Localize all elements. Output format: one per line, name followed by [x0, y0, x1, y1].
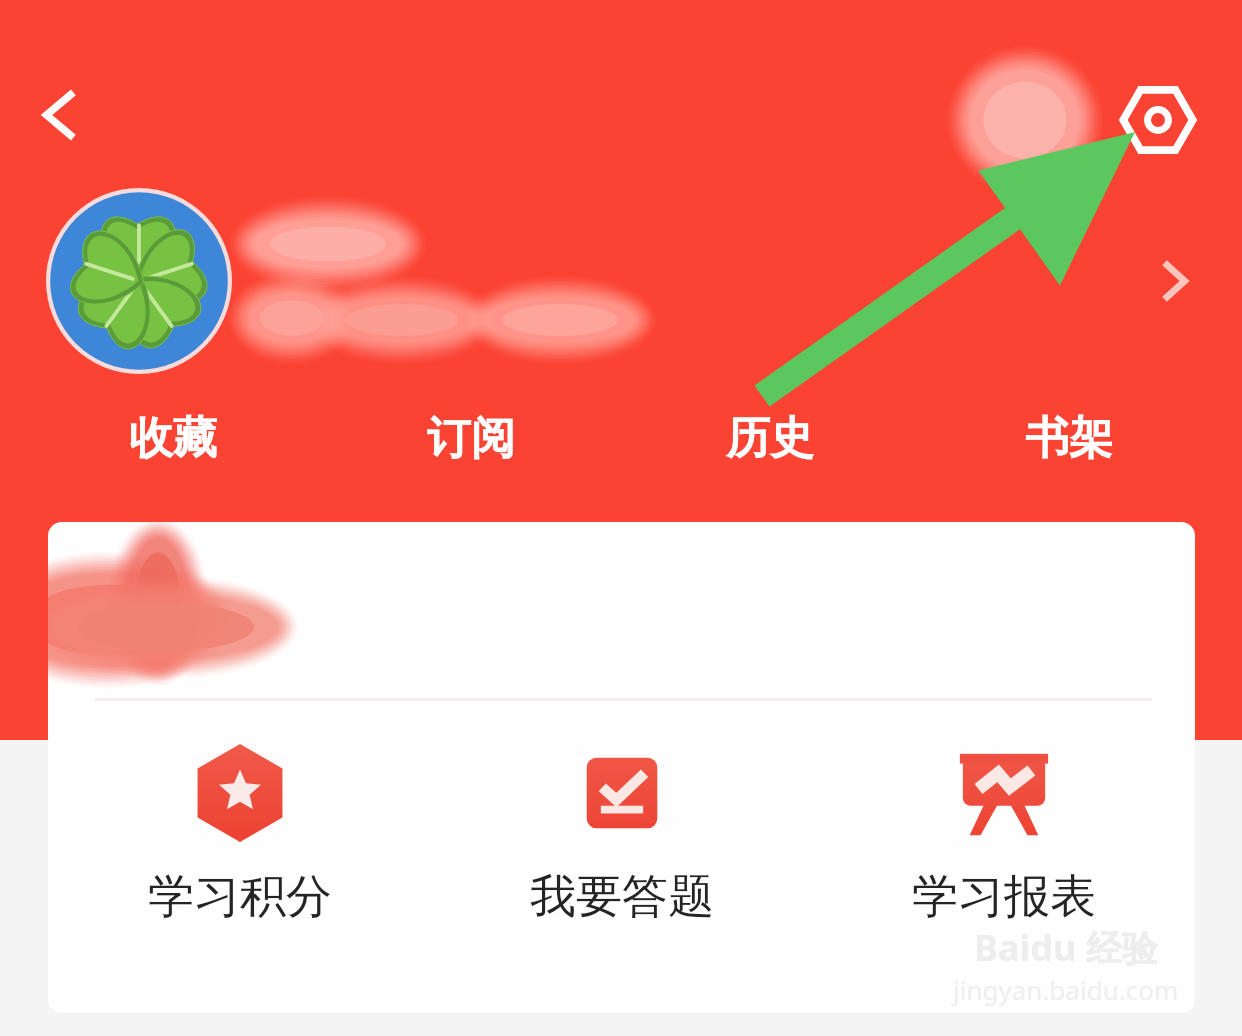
button[interactable]: Settings [1114, 76, 1202, 164]
button[interactable]: 学习报表 [813, 744, 1195, 926]
staticText: 订阅 [427, 411, 515, 466]
staticText: 收藏 [129, 411, 217, 466]
staticText: 书架 [1025, 411, 1113, 466]
button[interactable]: 我要答题 [431, 744, 813, 926]
staticText: 学习积分 [148, 868, 332, 926]
button[interactable]: 学习积分 [48, 744, 431, 926]
button[interactable]: More [1132, 238, 1218, 324]
button[interactable]: 书架 [919, 400, 1218, 476]
button[interactable]: Back [18, 74, 100, 156]
staticText: Baidu 经验 [974, 923, 1158, 972]
button[interactable]: 收藏 [24, 400, 322, 476]
staticText: 学习报表 [912, 868, 1096, 926]
staticText: jingyan.baidu.com [953, 972, 1179, 1007]
staticText: 历史 [726, 411, 814, 466]
button[interactable]: 历史 [620, 400, 919, 476]
button[interactable]: 订阅 [322, 400, 620, 476]
staticText: 我要答题 [530, 868, 714, 926]
